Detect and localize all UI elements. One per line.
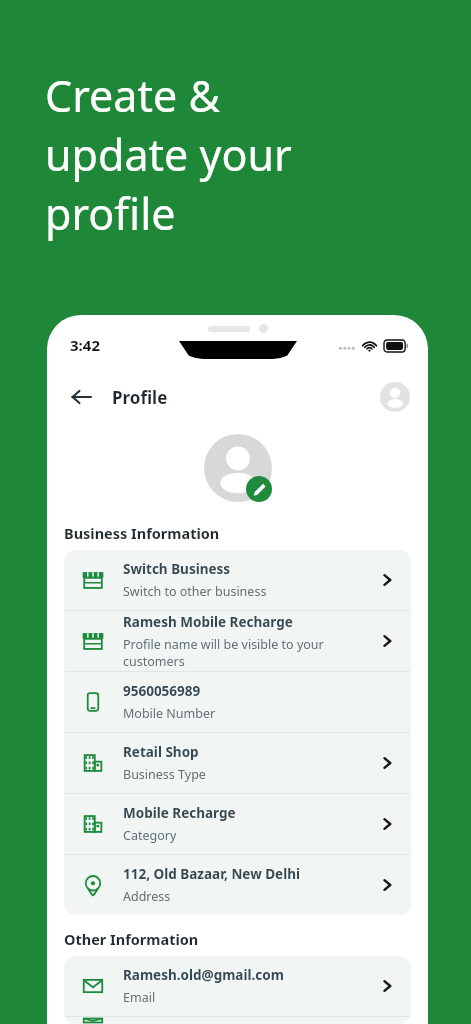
staticText: Mobile Number <box>123 705 216 722</box>
staticText: Category <box>123 827 177 844</box>
staticText: Ramesh Mobile Recharge <box>123 613 293 631</box>
button[interactable]: 9560056989 <box>64 672 411 732</box>
staticText: Profile <box>112 386 168 409</box>
staticText: update your <box>45 125 292 184</box>
staticText: 3:42 <box>70 335 100 355</box>
button[interactable]: Retail Shop <box>64 733 411 793</box>
staticText: Switch to other business <box>123 583 267 600</box>
staticText: Create & <box>45 66 220 125</box>
staticText: Switch Business <box>123 560 231 578</box>
staticText: Address <box>123 888 171 905</box>
button[interactable]: Ramesh Mobile Recharge <box>64 611 411 671</box>
staticText: Business Type <box>123 766 206 783</box>
button[interactable]: Switch Business <box>64 550 411 610</box>
button[interactable]: Ramesh.old@gmail.com <box>64 956 411 1016</box>
button[interactable] <box>64 1017 411 1024</box>
staticText: Mobile Recharge <box>123 804 236 822</box>
staticText: Business Information <box>64 523 220 543</box>
button[interactable]: Profile photo <box>204 434 272 502</box>
staticText: Ramesh.old@gmail.com <box>123 966 284 984</box>
staticText: 112, Old Bazaar, New Delhi <box>123 865 300 883</box>
button[interactable]: Edit profile photo <box>246 476 272 502</box>
button[interactable]: Account <box>380 382 410 412</box>
button[interactable]: 112, Old Bazaar, New Delhi <box>64 855 411 915</box>
staticText: Other Information <box>64 929 199 949</box>
staticText: Profile name will be visible to your cus… <box>123 636 379 670</box>
staticText: 9560056989 <box>123 682 201 700</box>
staticText: Email <box>123 989 156 1006</box>
staticText: profile <box>45 184 176 243</box>
button[interactable]: Mobile Recharge <box>64 794 411 854</box>
button[interactable]: Back <box>61 377 101 417</box>
staticText: Retail Shop <box>123 743 199 761</box>
